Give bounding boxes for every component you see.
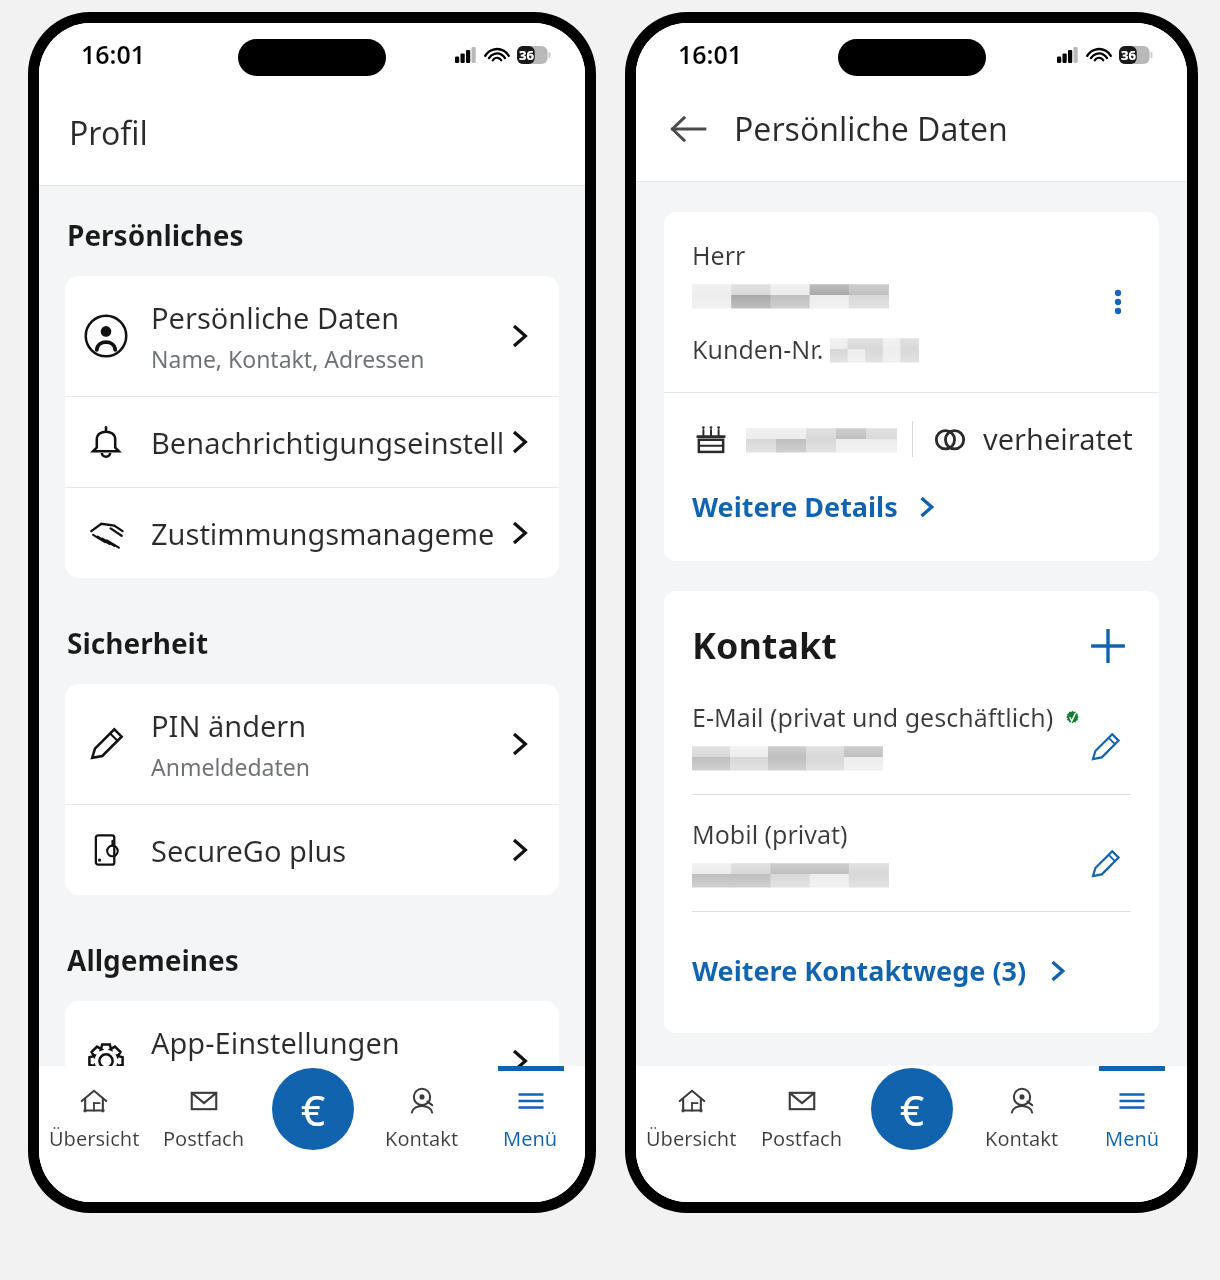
button[interactable]: PIN ändern <box>65 684 559 804</box>
button[interactable]: Kontakt <box>367 1082 476 1154</box>
staticText: Sicherheit <box>67 624 209 662</box>
button[interactable]: App-Einstellungen <box>65 1001 559 1121</box>
staticText: Weitere Details <box>692 488 898 525</box>
button[interactable]: Zurück <box>666 107 710 151</box>
button[interactable]: Übersicht <box>39 1082 149 1154</box>
staticText: E-Mail (privat und geschäftlich) <box>692 700 1054 734</box>
button[interactable]: Benachrichtigungseinstellun <box>65 397 559 487</box>
staticText: Kontakt <box>985 1125 1059 1152</box>
staticText: Persönliches <box>67 216 244 254</box>
staticText: Menü <box>1105 1125 1160 1152</box>
staticText: Postfach <box>761 1125 843 1152</box>
staticText: Name, Kontakt, Adressen <box>151 343 425 374</box>
staticText: Übersicht <box>646 1125 737 1152</box>
staticText: Anmeldedaten <box>151 751 310 782</box>
button[interactable]: Kontakt hinzufügen <box>1085 623 1131 669</box>
button[interactable]: Weitere Kontaktwege (3) <box>692 948 1071 993</box>
button[interactable]: SecureGo plus <box>65 805 559 895</box>
button[interactable]: Postfach <box>149 1082 258 1154</box>
button[interactable]: Mobil (privat) <box>692 817 1131 911</box>
button[interactable]: Persönliche Daten <box>65 276 559 396</box>
staticText: verheiratet <box>983 419 1133 458</box>
staticText: Passwort, App zurücksetzen <box>151 1068 454 1099</box>
button[interactable]: Euro Aktion <box>272 1068 354 1150</box>
staticText: Kontakt <box>692 621 1085 670</box>
staticText: Profil <box>69 111 148 155</box>
staticText: 36 <box>519 46 534 64</box>
staticText: Zustimmungsmanagement <box>151 514 505 553</box>
staticText: Übersicht <box>49 1125 140 1152</box>
button[interactable]: Herr <box>664 212 1159 392</box>
button[interactable]: Bearbeiten <box>1079 721 1131 773</box>
staticText: SecureGo plus <box>151 831 347 870</box>
button[interactable]: Zustimmungsmanagement <box>65 488 559 578</box>
staticText: Kunden-Nr. <box>692 332 824 366</box>
staticText: Herr <box>692 238 746 272</box>
staticText: PIN ändern <box>151 706 307 745</box>
button[interactable]: Kontakt <box>967 1082 1077 1154</box>
staticText: 36 <box>1121 46 1136 64</box>
staticText: Menü <box>503 1125 558 1152</box>
staticText: € <box>301 1081 326 1138</box>
button[interactable]: E-Mail (privat und geschäftlich) <box>692 700 1131 794</box>
staticText: App-Einstellungen <box>151 1023 400 1062</box>
button[interactable]: Bearbeiten <box>1079 838 1131 890</box>
button[interactable]: Weitere Details <box>692 484 940 529</box>
button[interactable]: Euro Aktion <box>871 1068 953 1150</box>
button[interactable]: Postfach <box>747 1082 857 1154</box>
staticText: 16:01 <box>678 37 743 71</box>
staticText: Allgemeines <box>67 941 239 979</box>
staticText: € <box>900 1081 925 1138</box>
staticText: 16:01 <box>81 37 146 71</box>
staticText: Postfach <box>163 1125 245 1152</box>
button[interactable]: Übersicht <box>636 1082 747 1154</box>
staticText: Weitere Kontaktwege (3) <box>692 952 1027 989</box>
button[interactable]: Weitere Optionen <box>1095 279 1141 325</box>
staticText: Persönliche Daten <box>151 298 400 337</box>
button[interactable]: Menü <box>1077 1082 1187 1154</box>
staticText: Persönliche Daten <box>734 107 1008 151</box>
staticText: Mobil (privat) <box>692 817 848 851</box>
staticText: Benachrichtigungseinstellun <box>151 423 505 462</box>
staticText: Kontakt <box>385 1125 459 1152</box>
button[interactable]: Menü <box>476 1082 585 1154</box>
